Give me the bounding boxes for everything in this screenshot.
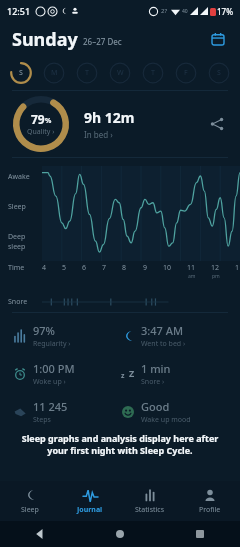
staticText: 3:47 AM	[141, 323, 184, 338]
staticText: 12:51	[7, 5, 31, 17]
staticText: M	[51, 68, 58, 78]
staticText: S	[19, 68, 23, 78]
staticText: 79	[31, 111, 45, 127]
button[interactable]: 11 245	[12, 393, 120, 431]
staticText: pm	[212, 273, 220, 280]
staticText: 1	[235, 263, 240, 273]
staticText: T	[85, 68, 89, 78]
staticText: 10	[163, 263, 172, 273]
staticText: 2?	[161, 7, 168, 15]
staticText: Snore	[8, 297, 28, 307]
staticText: sleep	[8, 242, 26, 252]
staticText: Sleep	[21, 505, 39, 515]
staticText: Woke up ›	[33, 377, 66, 387]
staticText: 7	[102, 263, 107, 273]
button[interactable]: Journal	[60, 481, 120, 521]
staticText: 1:00 PM	[33, 361, 75, 376]
staticText: Statistics	[135, 505, 165, 515]
staticText: 9h 12m	[84, 108, 135, 127]
staticText: Snore ›	[141, 377, 165, 387]
button[interactable]: z	[120, 355, 228, 393]
button[interactable]: 3:47 AM	[120, 317, 228, 355]
staticText: 11 245	[33, 399, 68, 414]
button[interactable]: Sleep	[0, 481, 60, 521]
button[interactable]: T	[72, 58, 102, 88]
staticText: F	[184, 68, 188, 78]
staticText: 4	[42, 263, 47, 273]
button[interactable]: 97%	[12, 317, 120, 355]
staticText: Deep	[8, 232, 26, 242]
staticText: Z	[129, 367, 135, 379]
button[interactable]: T	[138, 58, 168, 88]
button[interactable]: W	[105, 58, 135, 88]
staticText: In bed ›	[84, 129, 113, 140]
staticText: 9	[143, 263, 148, 273]
button[interactable]: M	[39, 58, 69, 88]
staticText: S	[217, 68, 221, 78]
staticText: Sleep graphs and analysis display here a…	[12, 432, 228, 456]
button[interactable]: S	[204, 58, 234, 88]
staticText: W	[117, 68, 124, 78]
staticText: 8	[122, 263, 127, 273]
staticText: %	[45, 116, 52, 126]
staticText: T	[151, 68, 155, 78]
button[interactable]: Profile	[180, 481, 240, 521]
button[interactable]: S	[6, 58, 36, 88]
button[interactable]: Calendar	[208, 29, 228, 49]
staticText: Quality ›	[27, 127, 55, 137]
staticText: Sleep	[8, 202, 26, 212]
button[interactable]: 9h 12m	[84, 108, 135, 140]
staticText: Sunday	[12, 27, 78, 52]
staticText: Regularity ›	[33, 339, 71, 349]
staticText: 12	[211, 263, 220, 273]
staticText: 6	[82, 263, 87, 273]
staticText: 40	[182, 8, 188, 15]
staticText: 11	[187, 263, 196, 273]
staticText: z	[121, 371, 125, 381]
staticText: Journal	[77, 505, 103, 515]
staticText: Time	[8, 263, 25, 273]
staticText: 1 min	[141, 361, 171, 376]
staticText: Went to bed ›	[141, 339, 186, 349]
button[interactable]: Good	[120, 393, 228, 431]
button[interactable]: 1:00 PM	[12, 355, 120, 393]
button[interactable]: 79	[12, 95, 70, 153]
staticText: 5	[62, 263, 67, 273]
button[interactable]: Share	[206, 113, 228, 135]
staticText: 26–27 Dec	[83, 36, 122, 47]
staticText: Profile	[199, 505, 221, 515]
staticText: Awake	[8, 172, 30, 182]
staticText: Steps	[33, 415, 51, 425]
staticText: Good	[141, 399, 170, 414]
button[interactable]: Statistics	[120, 481, 180, 521]
staticText: 97%	[33, 323, 55, 338]
button[interactable]: F	[171, 58, 201, 88]
staticText: am	[188, 273, 196, 280]
staticText: 17%	[217, 6, 233, 17]
staticText: Wake up mood	[141, 415, 191, 425]
